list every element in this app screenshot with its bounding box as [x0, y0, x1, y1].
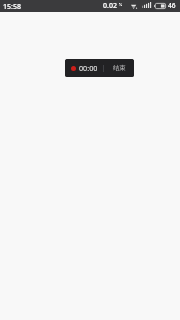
- staticText: 00:00: [79, 63, 98, 73]
- staticText: 结束: [113, 64, 126, 72]
- staticText: 15:58: [3, 2, 21, 12]
- button[interactable]: Recording, 00:00: [65, 59, 103, 77]
- button[interactable]: 结束: [104, 59, 134, 77]
- staticText: 46: [168, 1, 176, 10]
- staticText: 0.02: [103, 1, 117, 11]
